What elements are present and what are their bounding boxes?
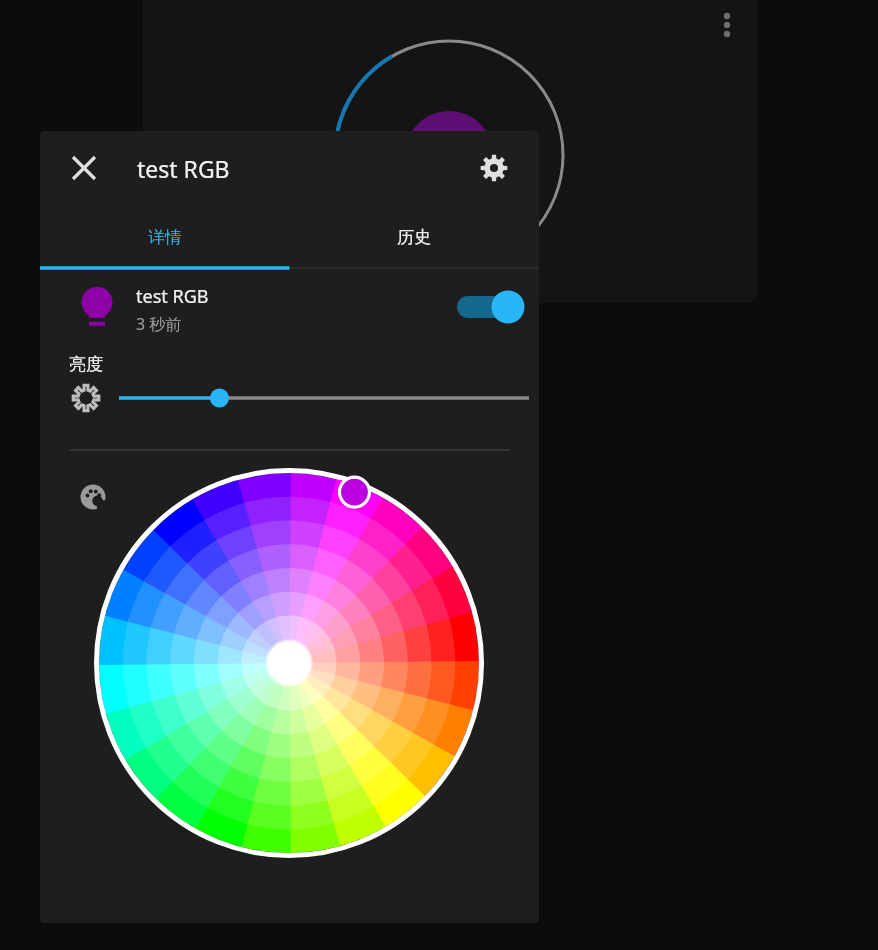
- staticText: 亮度: [69, 354, 103, 375]
- button[interactable]: Color: [76, 480, 110, 514]
- staticText: 详情: [148, 227, 182, 248]
- staticText: 3 秒前: [136, 313, 182, 335]
- staticText: test RGB: [137, 153, 230, 184]
- button[interactable]: [40, 364, 539, 430]
- staticText: test RGB: [136, 284, 209, 309]
- button[interactable]: 历史: [289, 206, 539, 268]
- button[interactable]: 详情: [40, 206, 289, 268]
- staticText: 历史: [397, 227, 431, 248]
- button[interactable]: test RGB: [40, 271, 539, 343]
- button[interactable]: Close: [60, 144, 108, 192]
- button[interactable]: Color wheel: [40, 462, 539, 923]
- button[interactable]: Power toggle: [445, 283, 523, 331]
- button[interactable]: Settings: [470, 144, 518, 192]
- button[interactable]: More options: [703, 1, 751, 49]
